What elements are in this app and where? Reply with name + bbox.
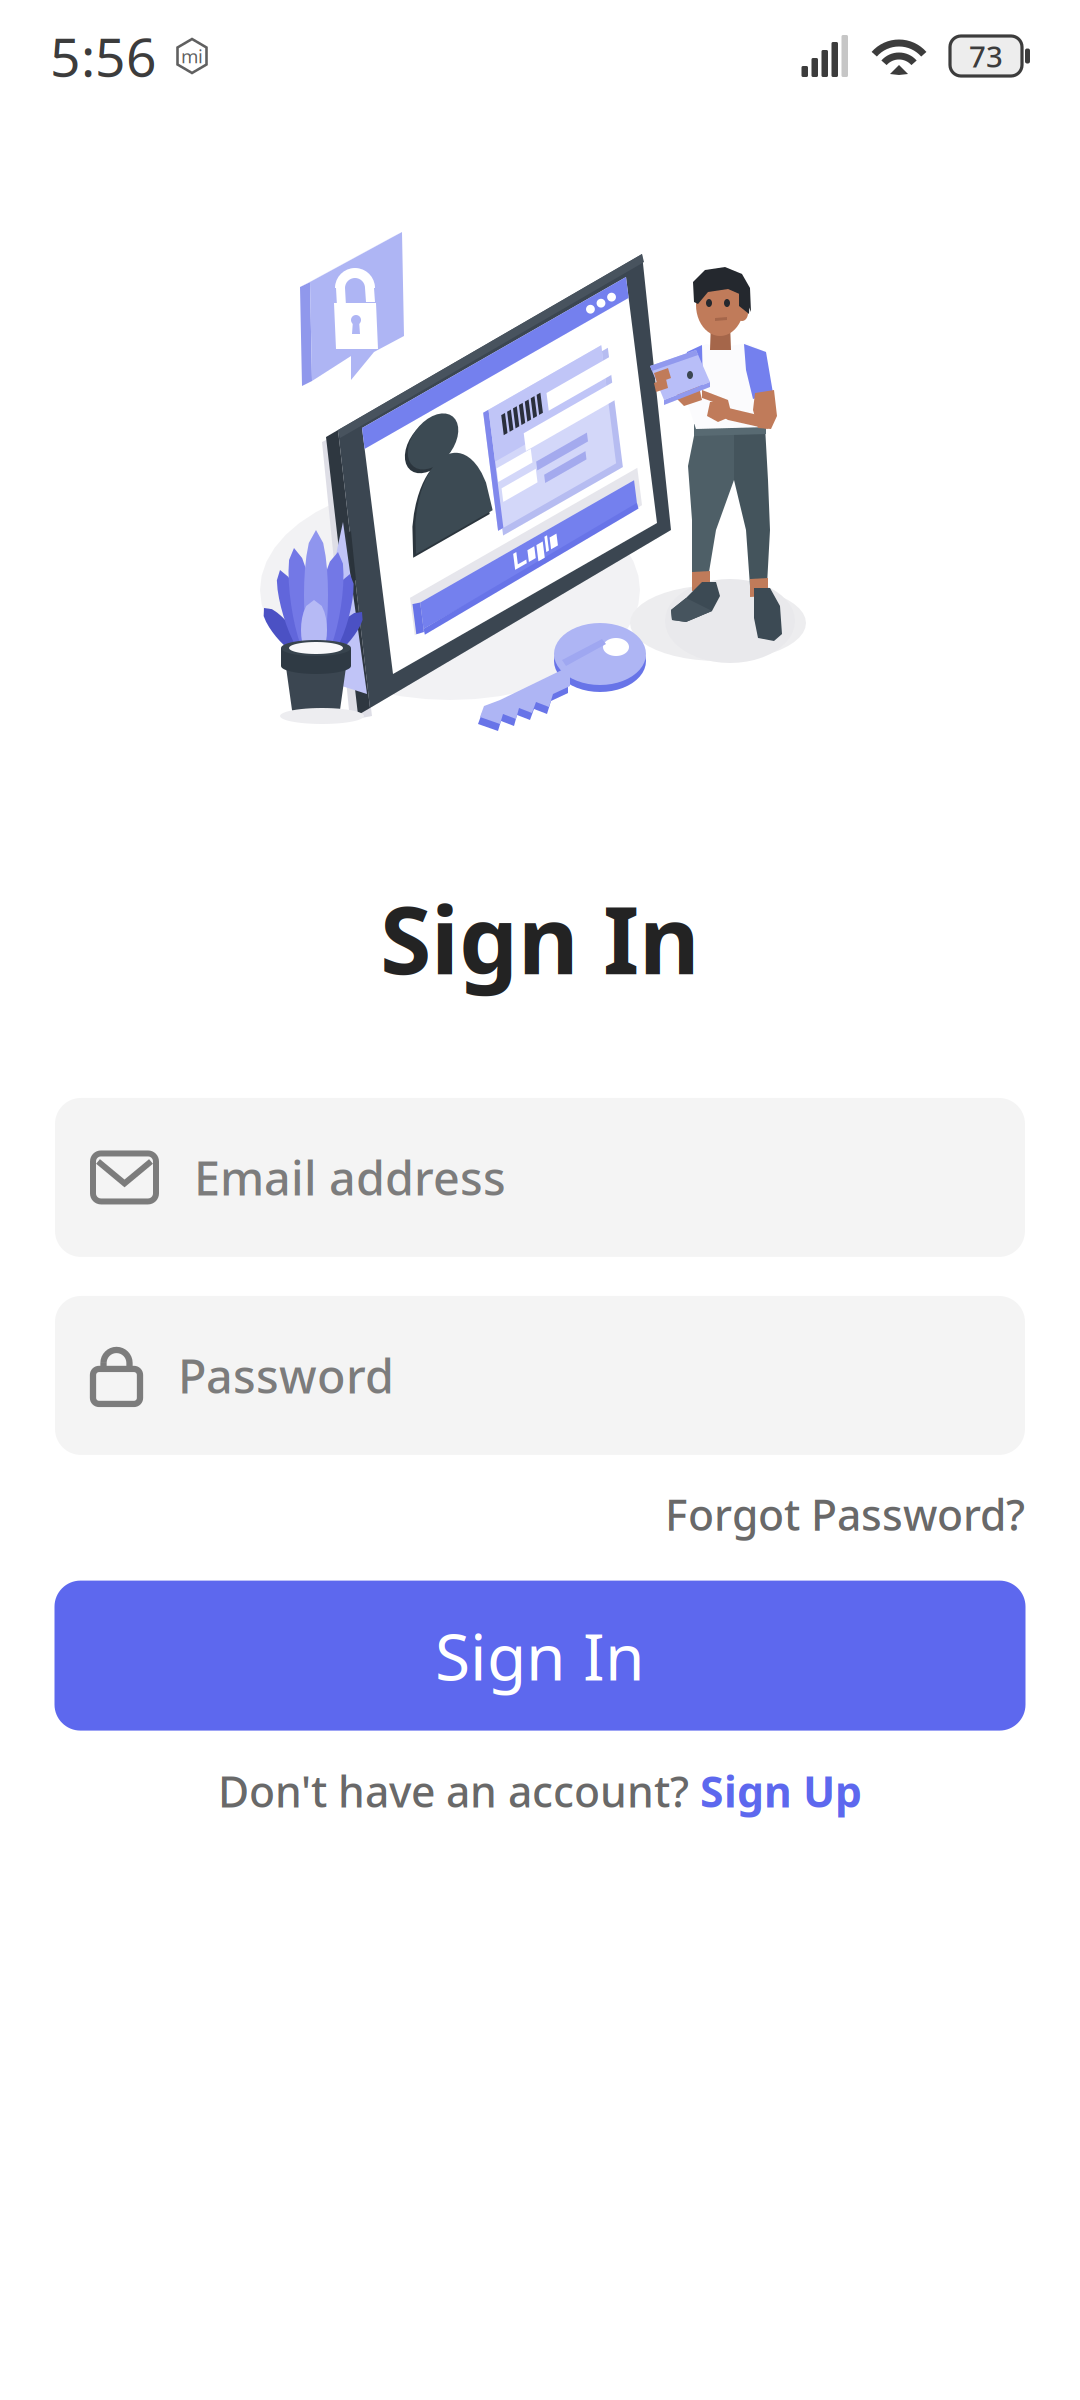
- button[interactable]: Don't have an account?: [218, 1763, 862, 1819]
- staticText: Forgot Password?: [665, 1486, 1025, 1543]
- staticText: Password: [178, 1344, 394, 1406]
- staticText: Don't have an account?: [218, 1763, 700, 1819]
- button[interactable]: Forgot Password?: [665, 1470, 1025, 1559]
- staticText: 5:56: [50, 21, 157, 91]
- staticText: Sign Up: [700, 1763, 862, 1819]
- staticText: mi: [181, 44, 203, 68]
- staticText: Email address: [194, 1146, 506, 1208]
- staticText: Sign In: [435, 1613, 645, 1698]
- staticText: Sign In: [380, 876, 700, 1000]
- button[interactable]: Sign In: [54, 1581, 1025, 1731]
- staticText: 73: [969, 36, 1003, 75]
